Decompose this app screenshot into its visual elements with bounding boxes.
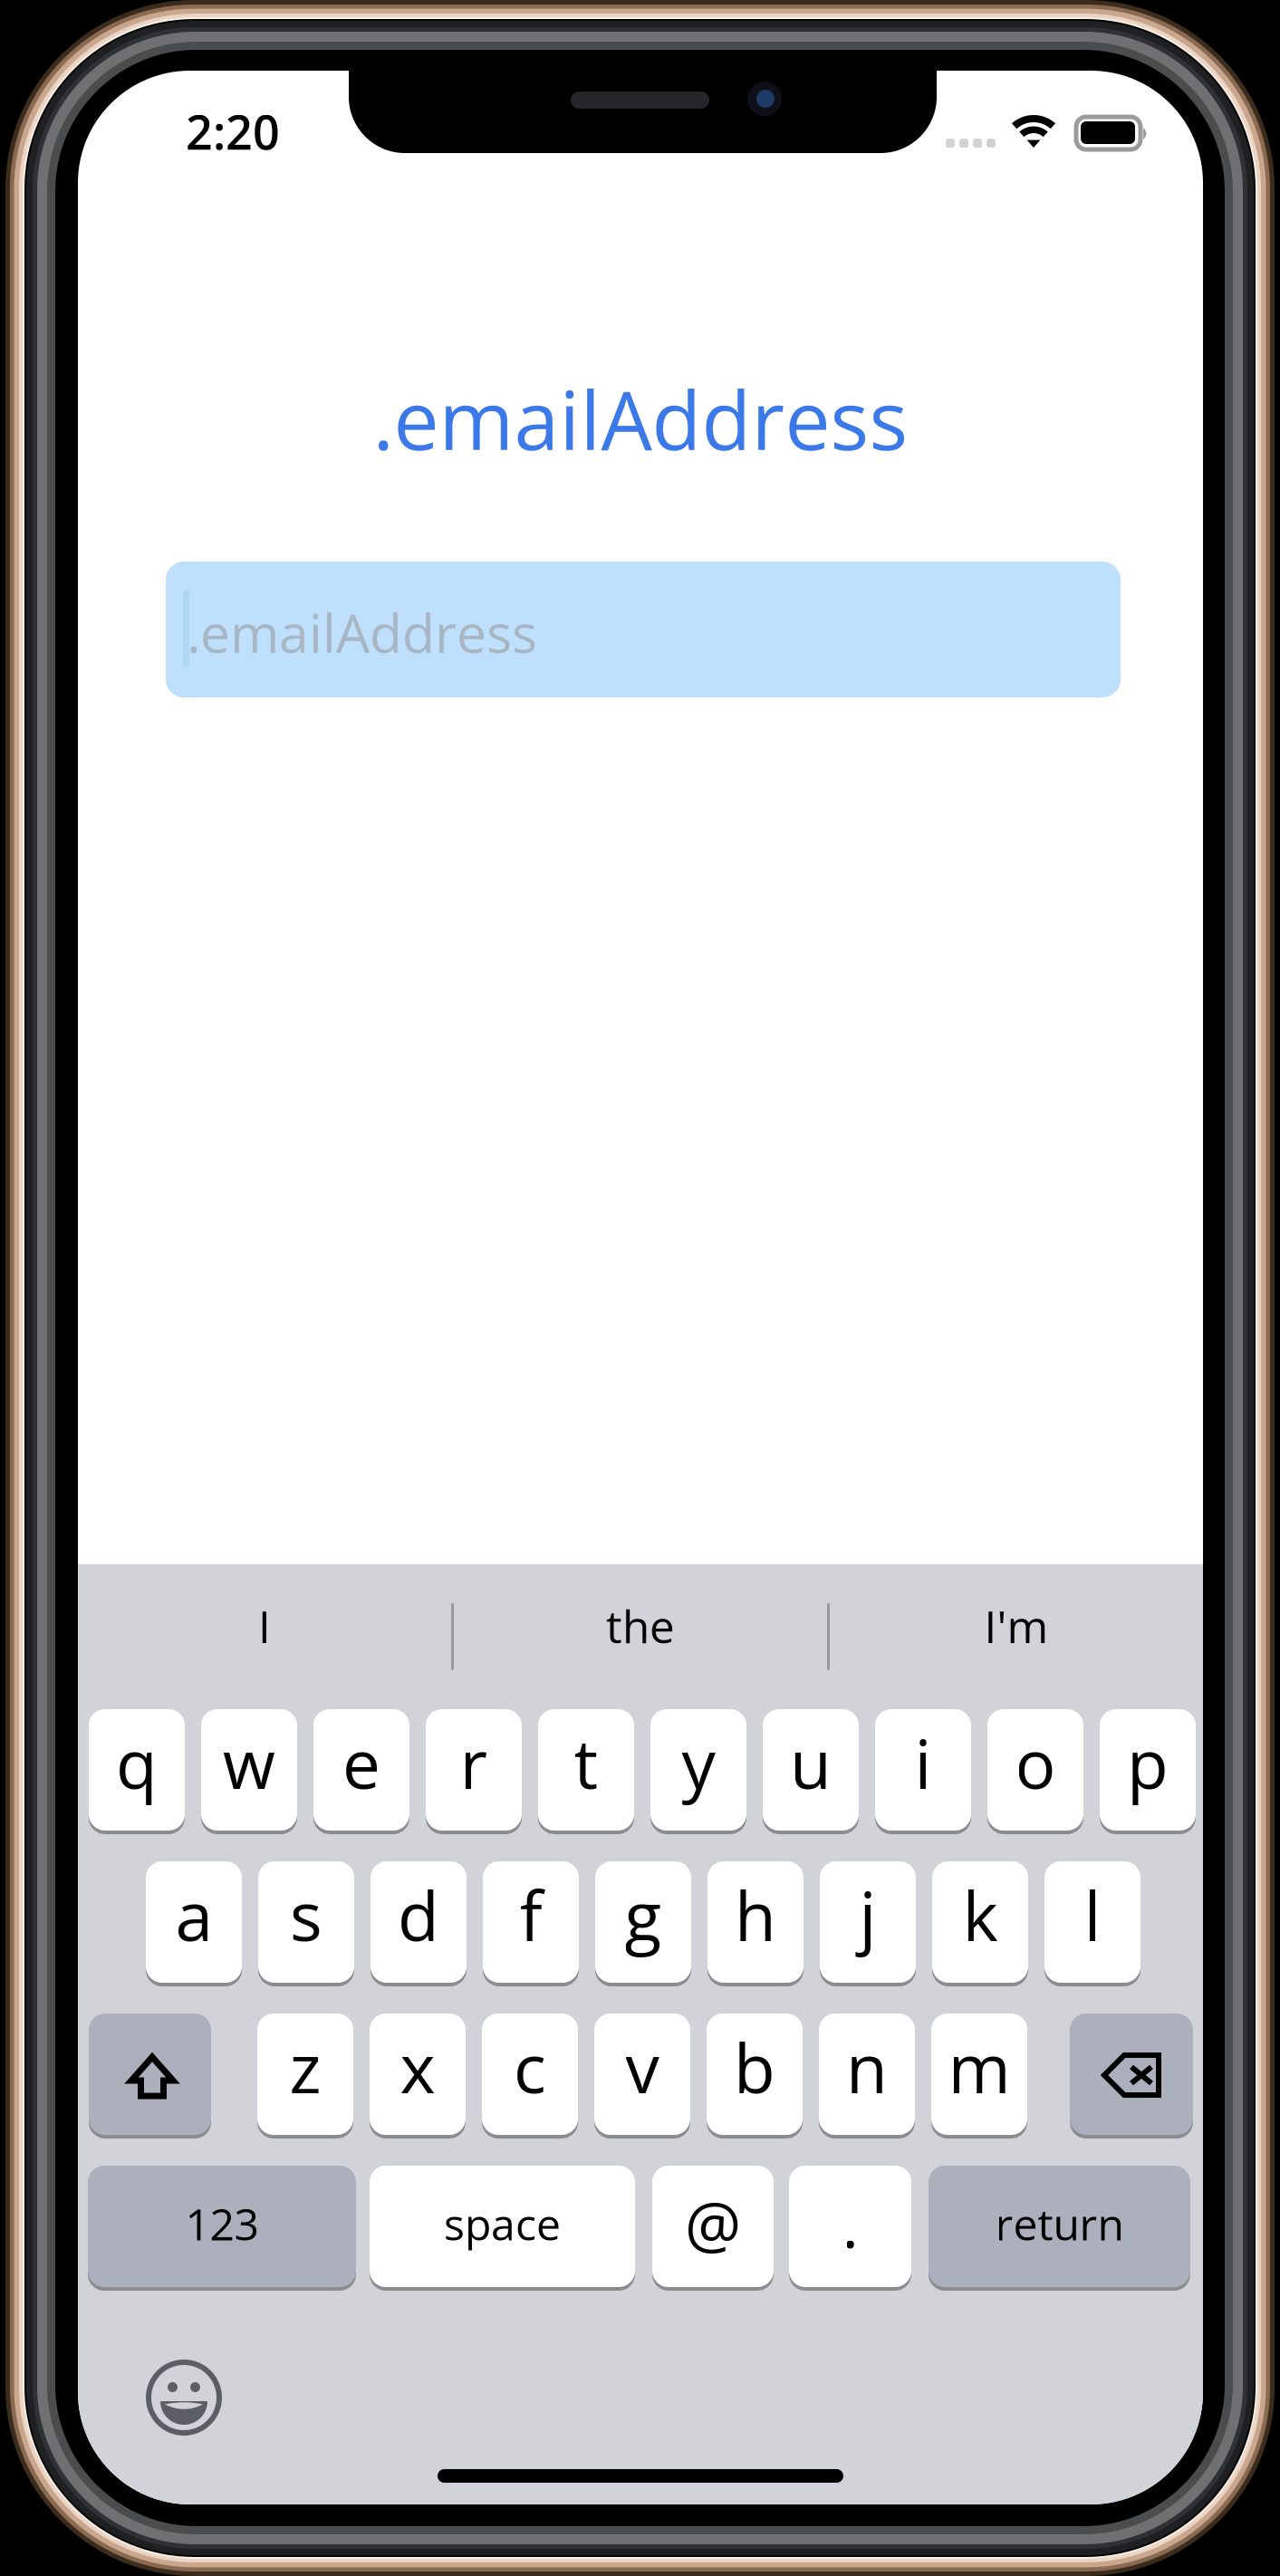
staticText: n: [846, 2021, 888, 2113]
button[interactable]: i: [875, 1709, 971, 1834]
staticText: I: [258, 1595, 271, 1656]
button[interactable]: m: [931, 2014, 1027, 2139]
button[interactable]: d: [371, 1861, 467, 1986]
button[interactable]: l: [1044, 1861, 1140, 1986]
button[interactable]: I: [78, 1553, 451, 1698]
staticText: w: [223, 1717, 275, 1809]
button[interactable]: .: [789, 2166, 911, 2291]
button[interactable]: w: [201, 1709, 297, 1834]
staticText: v: [626, 2021, 659, 2113]
staticText: q: [116, 1717, 158, 1809]
staticText: r: [460, 1717, 488, 1809]
staticText: y: [682, 1717, 715, 1809]
button[interactable]: p: [1100, 1709, 1196, 1834]
button[interactable]: y: [650, 1709, 746, 1834]
button[interactable]: f: [483, 1861, 579, 1986]
staticText: l: [1084, 1869, 1101, 1961]
button[interactable]: q: [89, 1709, 185, 1834]
button[interactable]: s: [258, 1861, 354, 1986]
staticText: j: [859, 1869, 876, 1961]
button[interactable]: Delete: [1070, 2014, 1193, 2139]
button[interactable]: o: [987, 1709, 1083, 1834]
staticText: .emailAddress: [187, 596, 537, 668]
button[interactable]: t: [538, 1709, 634, 1834]
staticText: .: [842, 2181, 858, 2266]
staticText: i: [914, 1717, 932, 1809]
button[interactable]: a: [146, 1861, 242, 1986]
button[interactable]: j: [820, 1861, 916, 1986]
button[interactable]: Emoji keyboard: [149, 2362, 221, 2435]
staticText: 123: [185, 2194, 259, 2253]
button[interactable]: n: [819, 2014, 915, 2139]
button[interactable]: 123: [88, 2166, 356, 2291]
staticText: 2:20: [186, 99, 280, 163]
staticText: I'm: [984, 1595, 1049, 1656]
staticText: u: [790, 1717, 832, 1809]
button[interactable]: @: [652, 2166, 774, 2291]
staticText: z: [289, 2021, 321, 2113]
button[interactable]: return: [929, 2166, 1190, 2291]
staticText: s: [290, 1869, 322, 1961]
staticText: f: [520, 1869, 542, 1961]
button[interactable]: r: [426, 1709, 522, 1834]
button[interactable]: g: [595, 1861, 691, 1986]
button[interactable]: v: [594, 2014, 690, 2139]
button[interactable]: Shift: [89, 2014, 211, 2139]
staticText: g: [625, 1869, 662, 1961]
staticText: c: [514, 2021, 546, 2113]
staticText: p: [1127, 1717, 1169, 1809]
staticText: h: [735, 1869, 776, 1961]
staticText: b: [734, 2021, 775, 2113]
staticText: space: [444, 2194, 561, 2253]
staticText: m: [948, 2021, 1011, 2113]
button[interactable]: c: [482, 2014, 578, 2139]
button[interactable]: u: [763, 1709, 859, 1834]
button[interactable]: e: [313, 1709, 409, 1834]
staticText: k: [962, 1869, 998, 1961]
button[interactable]: h: [707, 1861, 804, 1986]
button[interactable]: z: [257, 2014, 353, 2139]
staticText: the: [606, 1595, 675, 1656]
staticText: x: [400, 2021, 435, 2113]
staticText: return: [995, 2194, 1124, 2253]
staticText: e: [342, 1717, 380, 1809]
staticText: o: [1015, 1717, 1056, 1809]
staticText: d: [398, 1869, 439, 1961]
button[interactable]: x: [370, 2014, 466, 2139]
staticText: a: [175, 1869, 212, 1961]
button[interactable]: b: [707, 2014, 803, 2139]
staticText: @: [685, 2181, 741, 2266]
staticText: t: [574, 1717, 598, 1809]
button[interactable]: I'm: [830, 1553, 1203, 1698]
button[interactable]: k: [932, 1861, 1028, 1986]
button[interactable]: the: [454, 1553, 827, 1698]
button[interactable]: space: [370, 2166, 635, 2291]
staticText: .emailAddress: [373, 363, 908, 474]
